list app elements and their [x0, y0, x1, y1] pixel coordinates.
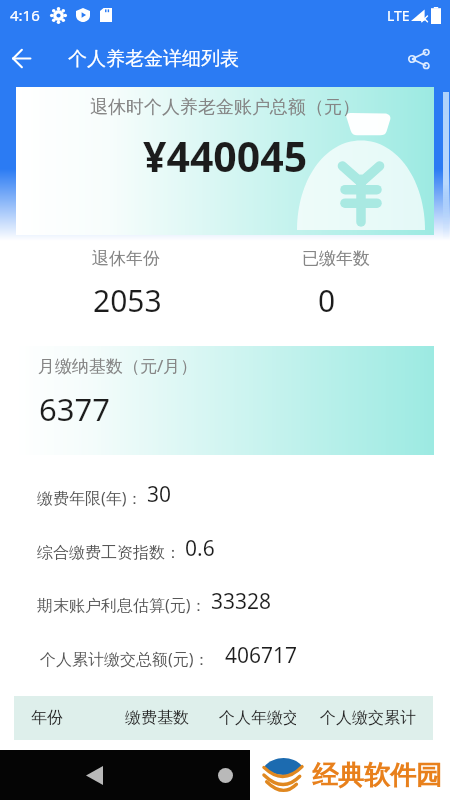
staticText: 6377: [39, 388, 110, 430]
staticText: 经典软件园: [312, 759, 442, 792]
button[interactable]: 个人年缴交: [219, 696, 296, 740]
staticText: 综合缴费工资指数：: [37, 543, 181, 563]
staticText: 0.6: [185, 534, 215, 563]
button[interactable]: 综合缴费工资指数：: [37, 534, 215, 563]
staticText: ¥440045: [143, 128, 308, 184]
button[interactable]: Share: [391, 31, 447, 86]
button[interactable]: 年份: [14, 696, 80, 740]
staticText: 4:16: [10, 5, 40, 25]
button[interactable]: Home: [210, 760, 240, 790]
button[interactable]: 已缴年数: [302, 248, 370, 269]
staticText: 年份: [31, 708, 63, 728]
button[interactable]: Back: [0, 31, 42, 86]
staticText: 个人缴交累计: [320, 708, 416, 728]
button[interactable]: Back: [79, 760, 109, 790]
staticText: 月缴纳基数（元/月）: [38, 354, 198, 377]
staticText: 退休年份: [92, 248, 160, 269]
button[interactable]: 期末账户利息估算(元)：: [37, 587, 272, 616]
button[interactable]: 缴费基数: [94, 696, 219, 740]
button[interactable]: 个人累计缴交总额(元)：: [40, 641, 298, 670]
button[interactable]: 个人缴交累计: [299, 696, 437, 740]
staticText: 33328: [211, 587, 272, 616]
staticText: 0: [318, 280, 336, 321]
staticText: 缴费年限(年)：: [37, 487, 143, 509]
staticText: 个人累计缴交总额(元)：: [40, 648, 210, 670]
staticText: 缴费基数: [125, 708, 189, 728]
button[interactable]: 退休年份: [92, 248, 160, 269]
staticText: 个人年缴交: [219, 708, 296, 728]
staticText: 个人养老金详细列表: [68, 47, 239, 71]
staticText: 已缴年数: [302, 248, 370, 269]
staticText: 退休时个人养老金账户总额（元）: [90, 96, 360, 119]
staticText: 406717: [225, 641, 298, 670]
button[interactable]: 缴费年限(年)：: [37, 480, 172, 509]
staticText: 期末账户利息估算(元)：: [37, 594, 207, 616]
staticText: LTE: [387, 6, 410, 25]
staticText: 30: [147, 480, 172, 509]
staticText: 2053: [93, 280, 162, 321]
